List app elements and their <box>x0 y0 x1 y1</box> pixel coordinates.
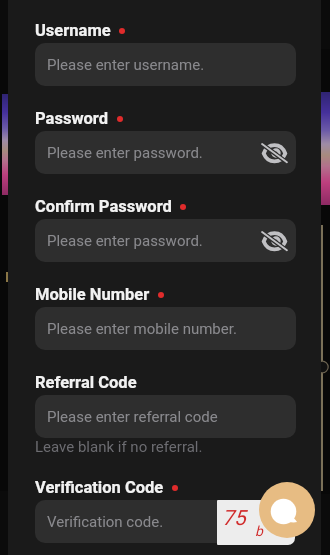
button[interactable]: Show password <box>253 131 296 174</box>
staticText: Please enter mobile number. <box>47 320 237 338</box>
staticText: Verification Code <box>35 478 164 497</box>
staticText: Please enter password. <box>47 144 203 162</box>
button[interactable]: Refresh captcha <box>217 500 295 545</box>
staticText: Confirm Password <box>35 197 172 216</box>
staticText: Verification code. <box>47 513 164 531</box>
staticText: Mobile Number <box>35 285 150 304</box>
button[interactable]: Please enter username. <box>35 43 296 86</box>
staticText: Leave blank if no referral. <box>35 438 203 456</box>
button[interactable]: Please enter referral code <box>35 395 296 438</box>
button[interactable]: Show password <box>253 219 296 262</box>
staticText: Referral Code <box>35 373 137 392</box>
button[interactable]: Please enter password. <box>35 219 296 262</box>
staticText: Please enter username. <box>47 56 205 74</box>
button[interactable]: Please enter password. <box>35 131 296 174</box>
staticText: Please enter password. <box>47 232 203 250</box>
button[interactable]: Customer service chat <box>259 482 315 538</box>
staticText: Username <box>35 21 111 40</box>
button[interactable]: Please enter mobile number. <box>35 307 296 350</box>
staticText: Password <box>35 109 109 128</box>
staticText: 75 <box>222 506 246 531</box>
staticText: Please enter referral code <box>47 408 218 426</box>
staticText: b <box>255 523 263 539</box>
button[interactable]: Verification code. <box>35 500 296 543</box>
